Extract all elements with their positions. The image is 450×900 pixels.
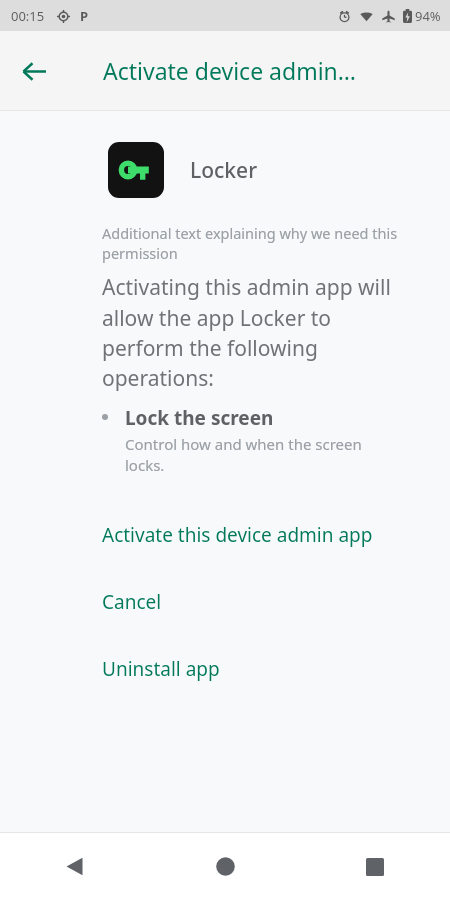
button[interactable]: Back bbox=[0, 833, 150, 900]
button[interactable]: Recent apps bbox=[300, 833, 450, 900]
staticText: Cancel bbox=[102, 589, 162, 615]
staticText: P bbox=[80, 7, 89, 25]
staticText: 94% bbox=[415, 7, 441, 25]
button[interactable]: Home bbox=[150, 833, 300, 900]
staticText: Locker bbox=[190, 156, 258, 185]
staticText: Uninstall app bbox=[102, 656, 220, 682]
staticText: Activate this device admin app bbox=[102, 522, 373, 548]
button[interactable]: Back bbox=[8, 45, 60, 97]
staticText: Activating this admin app will allow the… bbox=[102, 273, 404, 392]
staticText: 00:15 bbox=[11, 7, 45, 25]
staticText: Additional text explaining why we need t… bbox=[102, 223, 404, 264]
button[interactable]: Uninstall app bbox=[0, 649, 450, 688]
button[interactable]: Activate this device admin app bbox=[0, 515, 450, 554]
staticText: Lock the screen bbox=[125, 405, 274, 431]
staticText: Control how and when the screen locks. bbox=[125, 434, 404, 476]
button[interactable]: Cancel bbox=[0, 582, 450, 621]
staticText: Activate device admin… bbox=[103, 55, 356, 86]
